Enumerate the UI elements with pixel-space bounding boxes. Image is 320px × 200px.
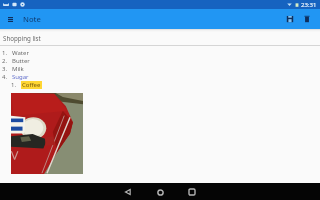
button[interactable]: Save — [283, 12, 297, 26]
staticText: Sugar — [12, 73, 29, 81]
button[interactable]: Home — [152, 184, 168, 200]
button[interactable]: Recents — [184, 184, 200, 200]
button[interactable]: Delete — [300, 12, 314, 26]
staticText: 23:31 — [301, 1, 317, 9]
button[interactable]: Menu — [3, 12, 17, 26]
staticText: Coffee — [22, 81, 41, 89]
staticText: 4. — [2, 73, 8, 81]
staticText: Water — [12, 49, 29, 57]
staticText: 2. — [2, 57, 8, 65]
staticText: 1. — [2, 49, 8, 57]
staticText: Butter — [12, 57, 30, 65]
button[interactable]: Back — [120, 184, 136, 200]
staticText: Shopping list — [3, 34, 41, 42]
staticText: Note — [23, 14, 41, 24]
staticText: 3. — [2, 65, 8, 73]
staticText: Milk — [12, 65, 24, 73]
staticText: 1. — [11, 81, 17, 89]
